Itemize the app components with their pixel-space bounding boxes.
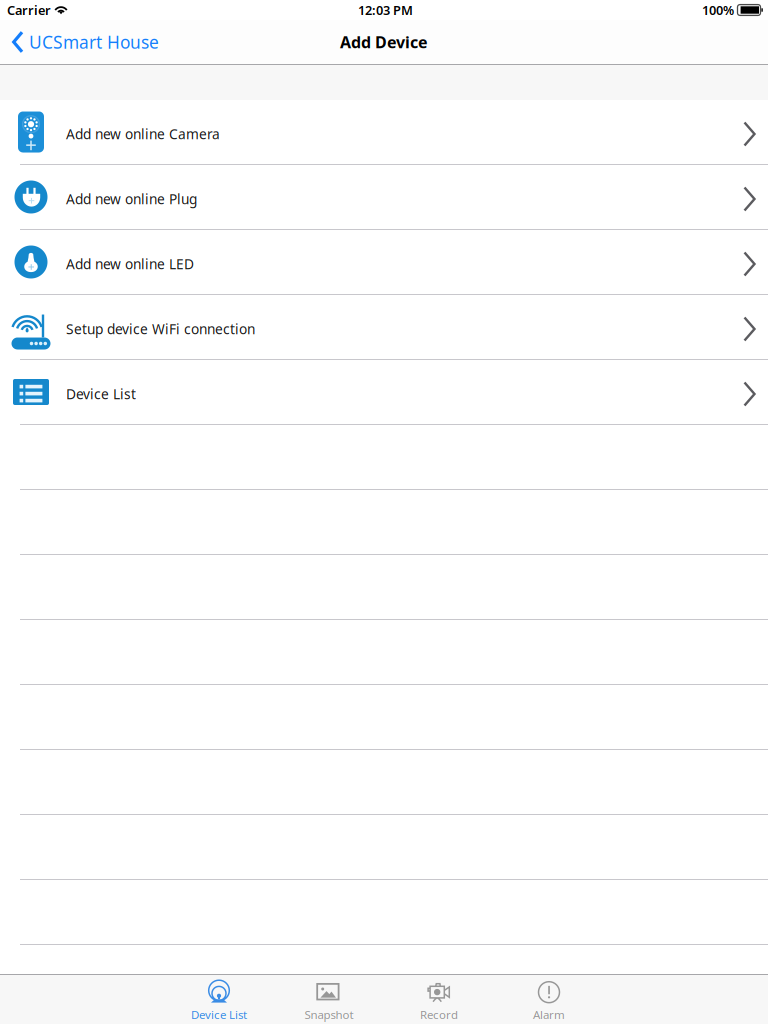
button[interactable]: Add new online Camera (0, 100, 768, 165)
staticText: 100% (702, 1, 734, 19)
staticText: Device List (66, 385, 136, 403)
button[interactable]: Add new online LED (0, 230, 768, 295)
button[interactable]: UCSmart House (0, 20, 159, 64)
button[interactable]: Setup device WiFi connection (0, 295, 768, 360)
button[interactable]: Add new online Plug (0, 165, 768, 230)
button[interactable]: Alarm (494, 977, 604, 1022)
button[interactable]: Device List (0, 360, 768, 425)
staticText: Snapshot (304, 1007, 353, 1022)
button[interactable]: Record (384, 977, 494, 1022)
staticText: UCSmart House (29, 30, 159, 53)
staticText: Device List (191, 1007, 247, 1022)
staticText: Add new online LED (66, 255, 194, 273)
staticText: 12:03 PM (358, 1, 413, 19)
staticText: Add new online Camera (66, 125, 220, 143)
staticText: Alarm (533, 1007, 565, 1022)
staticText: Carrier (7, 1, 51, 19)
staticText: Add new online Plug (66, 190, 197, 208)
staticText: Record (420, 1007, 458, 1022)
button[interactable]: Snapshot (274, 977, 384, 1022)
staticText: Setup device WiFi connection (66, 320, 255, 338)
button[interactable]: Device List (164, 977, 274, 1022)
staticText: Add Device (340, 31, 428, 53)
